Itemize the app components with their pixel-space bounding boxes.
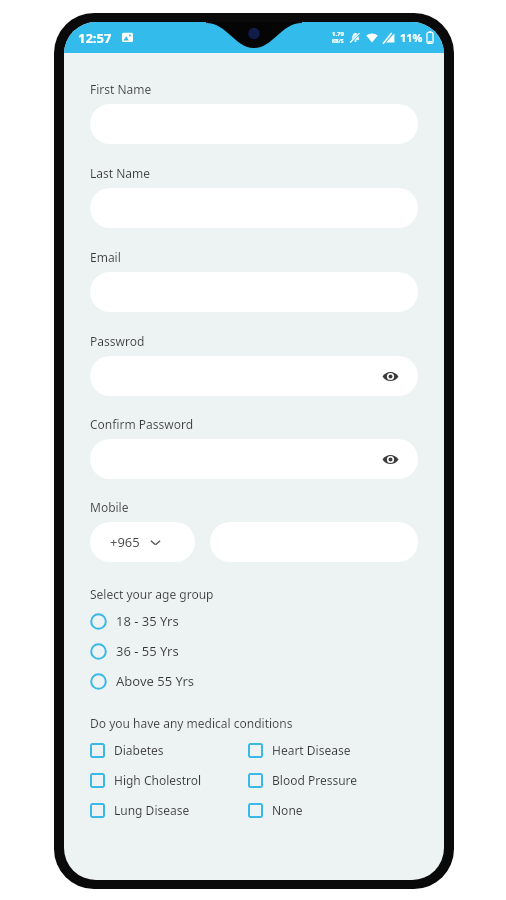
- staticText: Passwrod: [90, 333, 145, 349]
- staticText: Lung Disease: [114, 802, 190, 818]
- staticText: 18 - 35 Yrs: [116, 612, 179, 630]
- staticText: 12:57: [78, 29, 112, 47]
- staticText: Mobile: [90, 499, 129, 515]
- button[interactable]: [210, 522, 418, 562]
- staticText: 11%: [400, 30, 423, 45]
- button[interactable]: Show password: [90, 356, 418, 396]
- button[interactable]: 36 - 55 Yrs: [90, 640, 418, 662]
- staticText: Last Name: [90, 165, 151, 181]
- button[interactable]: +965: [90, 522, 195, 562]
- button[interactable]: High Cholestrol: [90, 771, 248, 789]
- staticText: Do you have any medical conditions: [90, 715, 293, 731]
- staticText: Blood Pressure: [272, 772, 358, 788]
- staticText: +965: [110, 533, 140, 551]
- staticText: Above 55 Yrs: [116, 672, 195, 690]
- staticText: Select your age group: [90, 586, 214, 602]
- button[interactable]: Show password: [90, 439, 418, 479]
- staticText: Heart Disease: [272, 742, 351, 758]
- button[interactable]: Above 55 Yrs: [90, 670, 418, 692]
- staticText: High Cholestrol: [114, 772, 202, 788]
- staticText: Diabetes: [114, 742, 164, 758]
- button[interactable]: Lung Disease: [90, 801, 248, 819]
- button[interactable]: Heart Disease: [248, 741, 418, 759]
- button[interactable]: Blood Pressure: [248, 771, 418, 789]
- staticText: First Name: [90, 81, 152, 97]
- staticText: 36 - 55 Yrs: [116, 642, 179, 660]
- button[interactable]: None: [248, 801, 418, 819]
- button[interactable]: Show password: [380, 449, 400, 469]
- button[interactable]: 18 - 35 Yrs: [90, 610, 418, 632]
- staticText: 1.79: [332, 30, 344, 38]
- staticText: KB/S: [332, 38, 344, 45]
- button[interactable]: Diabetes: [90, 741, 248, 759]
- staticText: None: [272, 802, 303, 818]
- button[interactable]: Show password: [380, 366, 400, 386]
- staticText: Confirm Password: [90, 416, 194, 432]
- staticText: Email: [90, 249, 121, 265]
